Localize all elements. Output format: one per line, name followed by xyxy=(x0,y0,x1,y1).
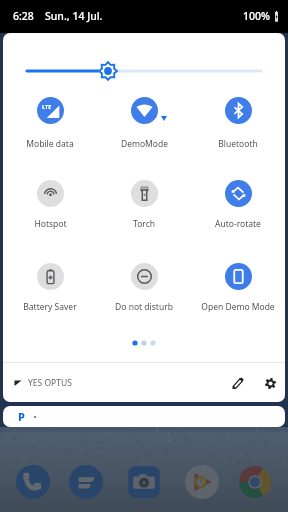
button[interactable]: DemoMode xyxy=(100,97,188,143)
button[interactable]: Torch xyxy=(100,180,188,226)
button[interactable]: Battery Saver xyxy=(6,263,94,309)
button[interactable]: Brightness xyxy=(20,62,268,80)
button[interactable]: Camera xyxy=(126,464,162,500)
staticText: 100% xyxy=(243,9,270,23)
button[interactable]: LTE xyxy=(6,97,94,143)
button[interactable]: Chrome xyxy=(237,464,273,500)
button[interactable]: Bluetooth xyxy=(194,97,282,143)
button[interactable]: Settings xyxy=(259,372,281,394)
staticText: Do not disturb xyxy=(115,301,173,313)
staticText: Torch xyxy=(133,218,155,230)
staticText: Bluetooth xyxy=(218,138,258,150)
button[interactable]: P xyxy=(3,406,285,427)
button[interactable]: Open Demo Mode xyxy=(194,263,282,309)
staticText: Open Demo Mode xyxy=(201,301,275,313)
staticText: LTE xyxy=(42,103,52,110)
staticText: Mobile data xyxy=(26,138,74,150)
button[interactable]: Play Games xyxy=(184,464,220,500)
staticText: YES OPTUS xyxy=(28,377,72,389)
button[interactable]: Hotspot xyxy=(6,180,94,226)
staticText: DemoMode xyxy=(121,138,168,150)
staticText: Hotspot xyxy=(34,218,67,230)
button[interactable]: Phone xyxy=(15,464,51,500)
staticText: Sun., 14 Jul. xyxy=(45,9,103,23)
button[interactable]: YES OPTUS xyxy=(14,377,72,389)
staticText: 6:28 xyxy=(13,9,34,23)
staticText: Battery Saver xyxy=(23,301,77,313)
staticText: P xyxy=(18,409,25,424)
staticText: Auto-rotate xyxy=(215,218,261,230)
button[interactable]: Auto-rotate xyxy=(194,180,282,226)
button[interactable]: Messages xyxy=(68,464,104,500)
button[interactable]: Edit tiles xyxy=(227,372,249,394)
button[interactable]: Do not disturb xyxy=(100,263,188,309)
